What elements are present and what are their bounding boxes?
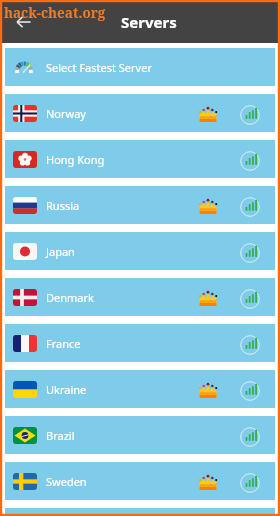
staticText: Japan xyxy=(46,244,75,259)
staticText: hack-cheat.org xyxy=(4,4,106,22)
staticText: Sweden xyxy=(46,474,87,489)
staticText: Russia xyxy=(46,198,80,213)
staticText: Denmark xyxy=(46,290,94,305)
button[interactable]: Ukraine xyxy=(5,370,275,408)
staticText: Select Fastest Server xyxy=(46,60,152,75)
button[interactable]: Brazil xyxy=(5,416,275,454)
staticText: Hong Kong xyxy=(46,152,105,167)
button[interactable]: France xyxy=(5,324,275,362)
staticText: Brazil xyxy=(46,428,75,443)
staticText: France xyxy=(46,336,81,351)
button[interactable]: Denmark xyxy=(5,278,275,316)
button[interactable]: Back xyxy=(13,10,37,34)
staticText: Norway xyxy=(46,106,86,121)
button[interactable]: Select Fastest Server xyxy=(5,48,275,86)
button[interactable]: Japan xyxy=(5,232,275,270)
button[interactable]: Norway xyxy=(5,94,275,132)
staticText: Servers xyxy=(121,12,177,32)
button[interactable] xyxy=(5,508,275,516)
staticText: Ukraine xyxy=(46,382,87,397)
button[interactable]: Hong Kong xyxy=(5,140,275,178)
button[interactable]: Sweden xyxy=(5,462,275,500)
button[interactable]: Russia xyxy=(5,186,275,224)
